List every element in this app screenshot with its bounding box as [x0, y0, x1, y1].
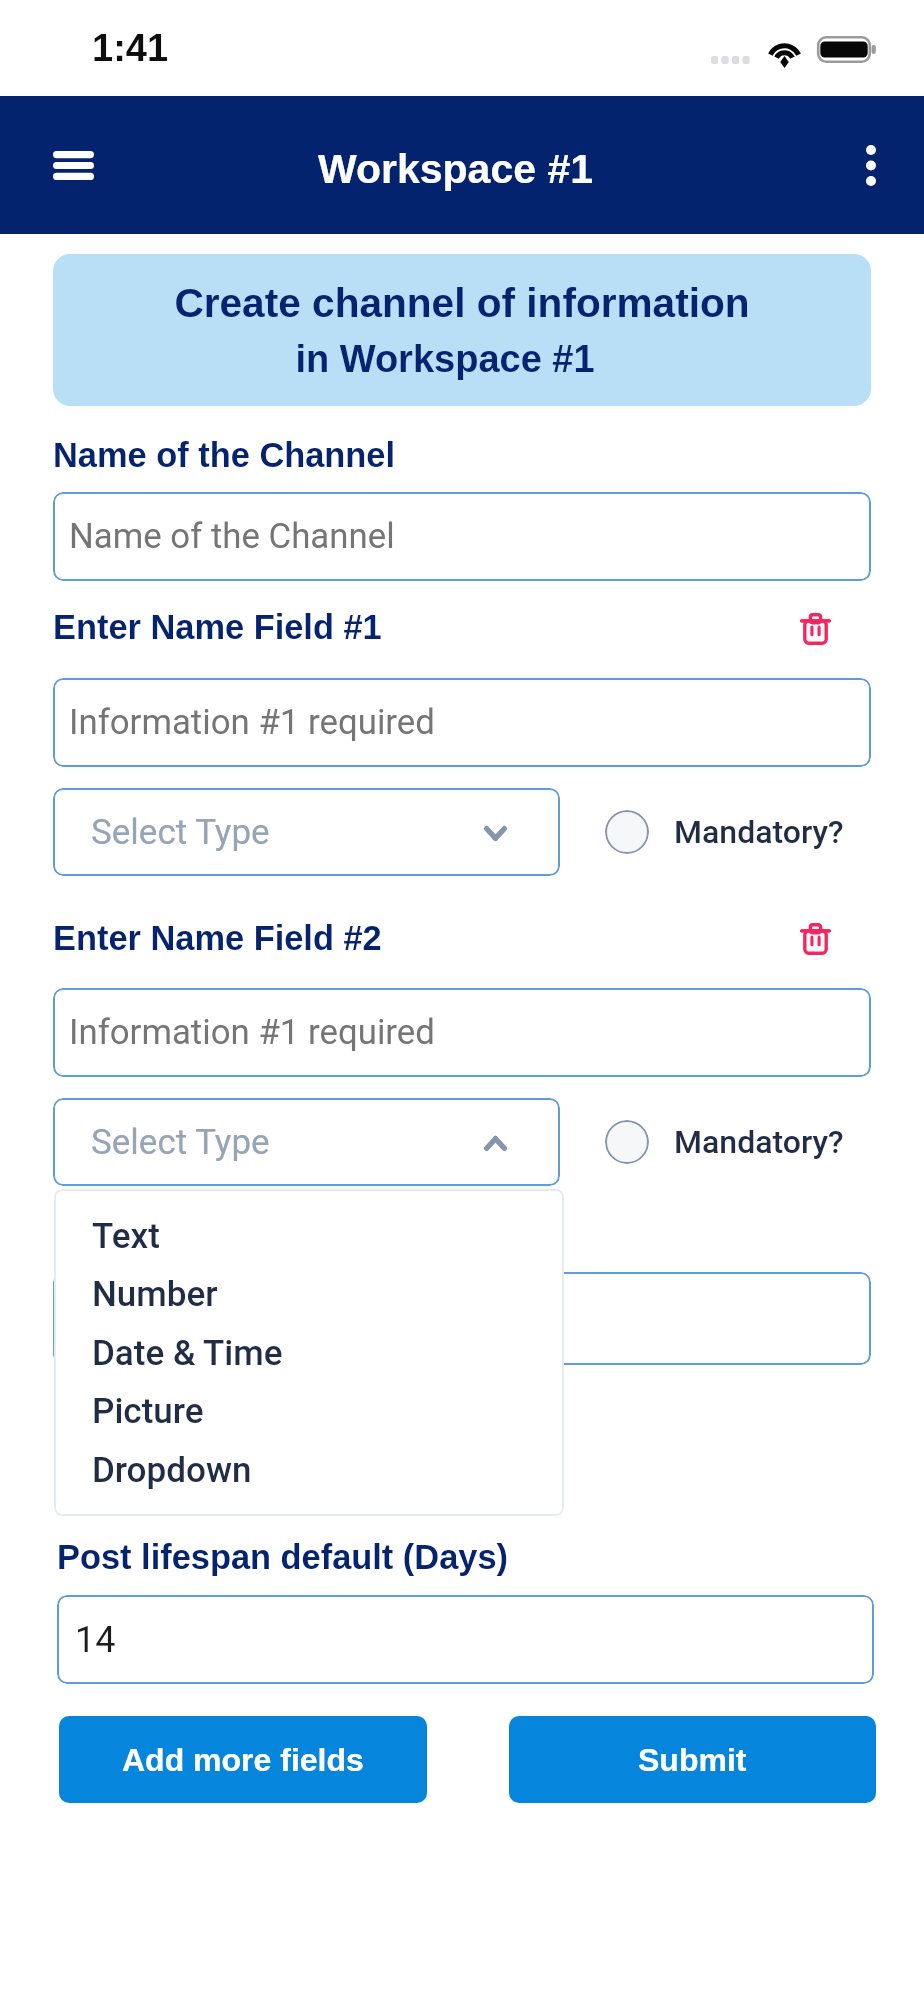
- staticText: Select Type: [91, 812, 270, 853]
- staticText: Text: [92, 1216, 160, 1257]
- staticText: Name of the Channel: [53, 436, 396, 474]
- staticText: Mandatory?: [674, 813, 844, 851]
- button[interactable]: Dropdown: [54, 1440, 564, 1501]
- staticText: Number: [92, 1274, 218, 1315]
- staticText: Information #1 required: [69, 1012, 435, 1053]
- button[interactable]: Select Type: [53, 1098, 560, 1186]
- button[interactable]: 14: [57, 1595, 874, 1684]
- button[interactable]: Name of the Channel: [53, 492, 871, 581]
- button[interactable]: More options: [829, 124, 912, 207]
- button[interactable]: Open navigation menu: [32, 124, 115, 207]
- staticText: in Workspace #1: [295, 338, 595, 380]
- staticText: Information #1 required: [69, 702, 435, 743]
- staticText: Picture: [92, 1391, 204, 1432]
- button[interactable]: Add more fields: [59, 1716, 427, 1803]
- button[interactable]: Date & Time: [54, 1323, 564, 1384]
- button[interactable]: Picture: [54, 1381, 564, 1442]
- button[interactable]: Text: [54, 1206, 564, 1267]
- button[interactable]: Mandatory?: [605, 1114, 844, 1170]
- staticText: Dropdown: [92, 1450, 252, 1491]
- staticText: Create channel of information: [174, 280, 750, 325]
- staticText: Name of the Channel: [69, 516, 395, 557]
- staticText: Post lifespan default (Days): [57, 1538, 508, 1576]
- staticText: Enter Name Field #2: [53, 919, 382, 957]
- staticText: Mandatory?: [674, 1123, 844, 1161]
- staticText: Date & Time: [92, 1333, 283, 1374]
- button[interactable]: Mandatory?: [605, 804, 844, 860]
- button[interactable]: Delete field: [787, 911, 843, 967]
- button[interactable]: [53, 1272, 871, 1365]
- staticText: Workspace #1: [318, 146, 594, 192]
- staticText: 14: [75, 1619, 116, 1661]
- button[interactable]: Delete field: [787, 601, 843, 657]
- button[interactable]: Submit: [509, 1716, 876, 1803]
- staticText: 1:41: [92, 27, 169, 69]
- button[interactable]: Information #1 required: [53, 678, 871, 767]
- staticText: Submit: [638, 1742, 747, 1778]
- button[interactable]: Number: [54, 1264, 564, 1325]
- staticText: Enter Name Field #1: [53, 608, 382, 646]
- staticText: Select Type: [91, 1122, 270, 1163]
- button[interactable]: Select Type: [53, 788, 560, 876]
- button[interactable]: Information #1 required: [53, 988, 871, 1077]
- staticText: Add more fields: [122, 1742, 364, 1778]
